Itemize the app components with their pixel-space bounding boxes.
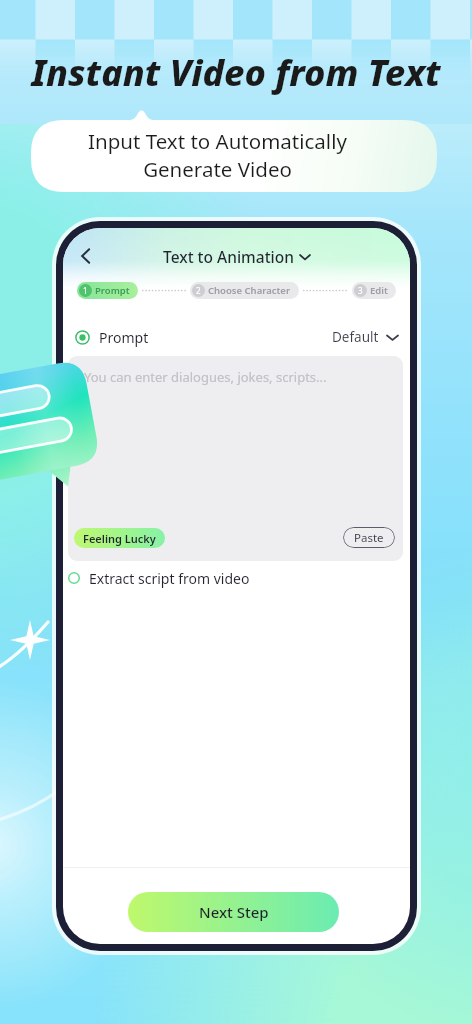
staticText: Instant Video from Text	[0, 48, 472, 97]
staticText: Feeling Lucky	[83, 531, 156, 546]
staticText: Paste	[354, 530, 384, 546]
staticText: Extract script from video	[89, 569, 250, 588]
button[interactable]: 3	[352, 282, 396, 299]
staticText: Text to Animation	[163, 246, 294, 267]
button[interactable]: 1	[77, 282, 138, 299]
staticText: 3	[358, 285, 363, 296]
staticText: 2	[196, 285, 201, 296]
button[interactable]: Extract script from video	[63, 566, 410, 590]
staticText: You can enter dialogues, jokes, scripts.…	[84, 368, 327, 386]
staticText: Choose Character	[208, 284, 291, 297]
staticText: Input Text to Automatically Generate Vid…	[88, 127, 347, 183]
button[interactable]: Next Step	[128, 892, 339, 932]
staticText: Default	[332, 328, 379, 346]
staticText: Prompt	[95, 284, 130, 297]
button[interactable]: 2	[190, 282, 299, 299]
staticText: Prompt	[99, 328, 149, 347]
button[interactable]: Paste	[343, 527, 395, 548]
staticText: Edit	[370, 284, 388, 297]
staticText: Next Step	[199, 902, 269, 922]
button[interactable]: Feeling Lucky	[74, 528, 165, 548]
button[interactable]: Default	[332, 328, 398, 346]
button[interactable]: Back	[66, 236, 106, 276]
staticText: 1	[83, 285, 88, 296]
